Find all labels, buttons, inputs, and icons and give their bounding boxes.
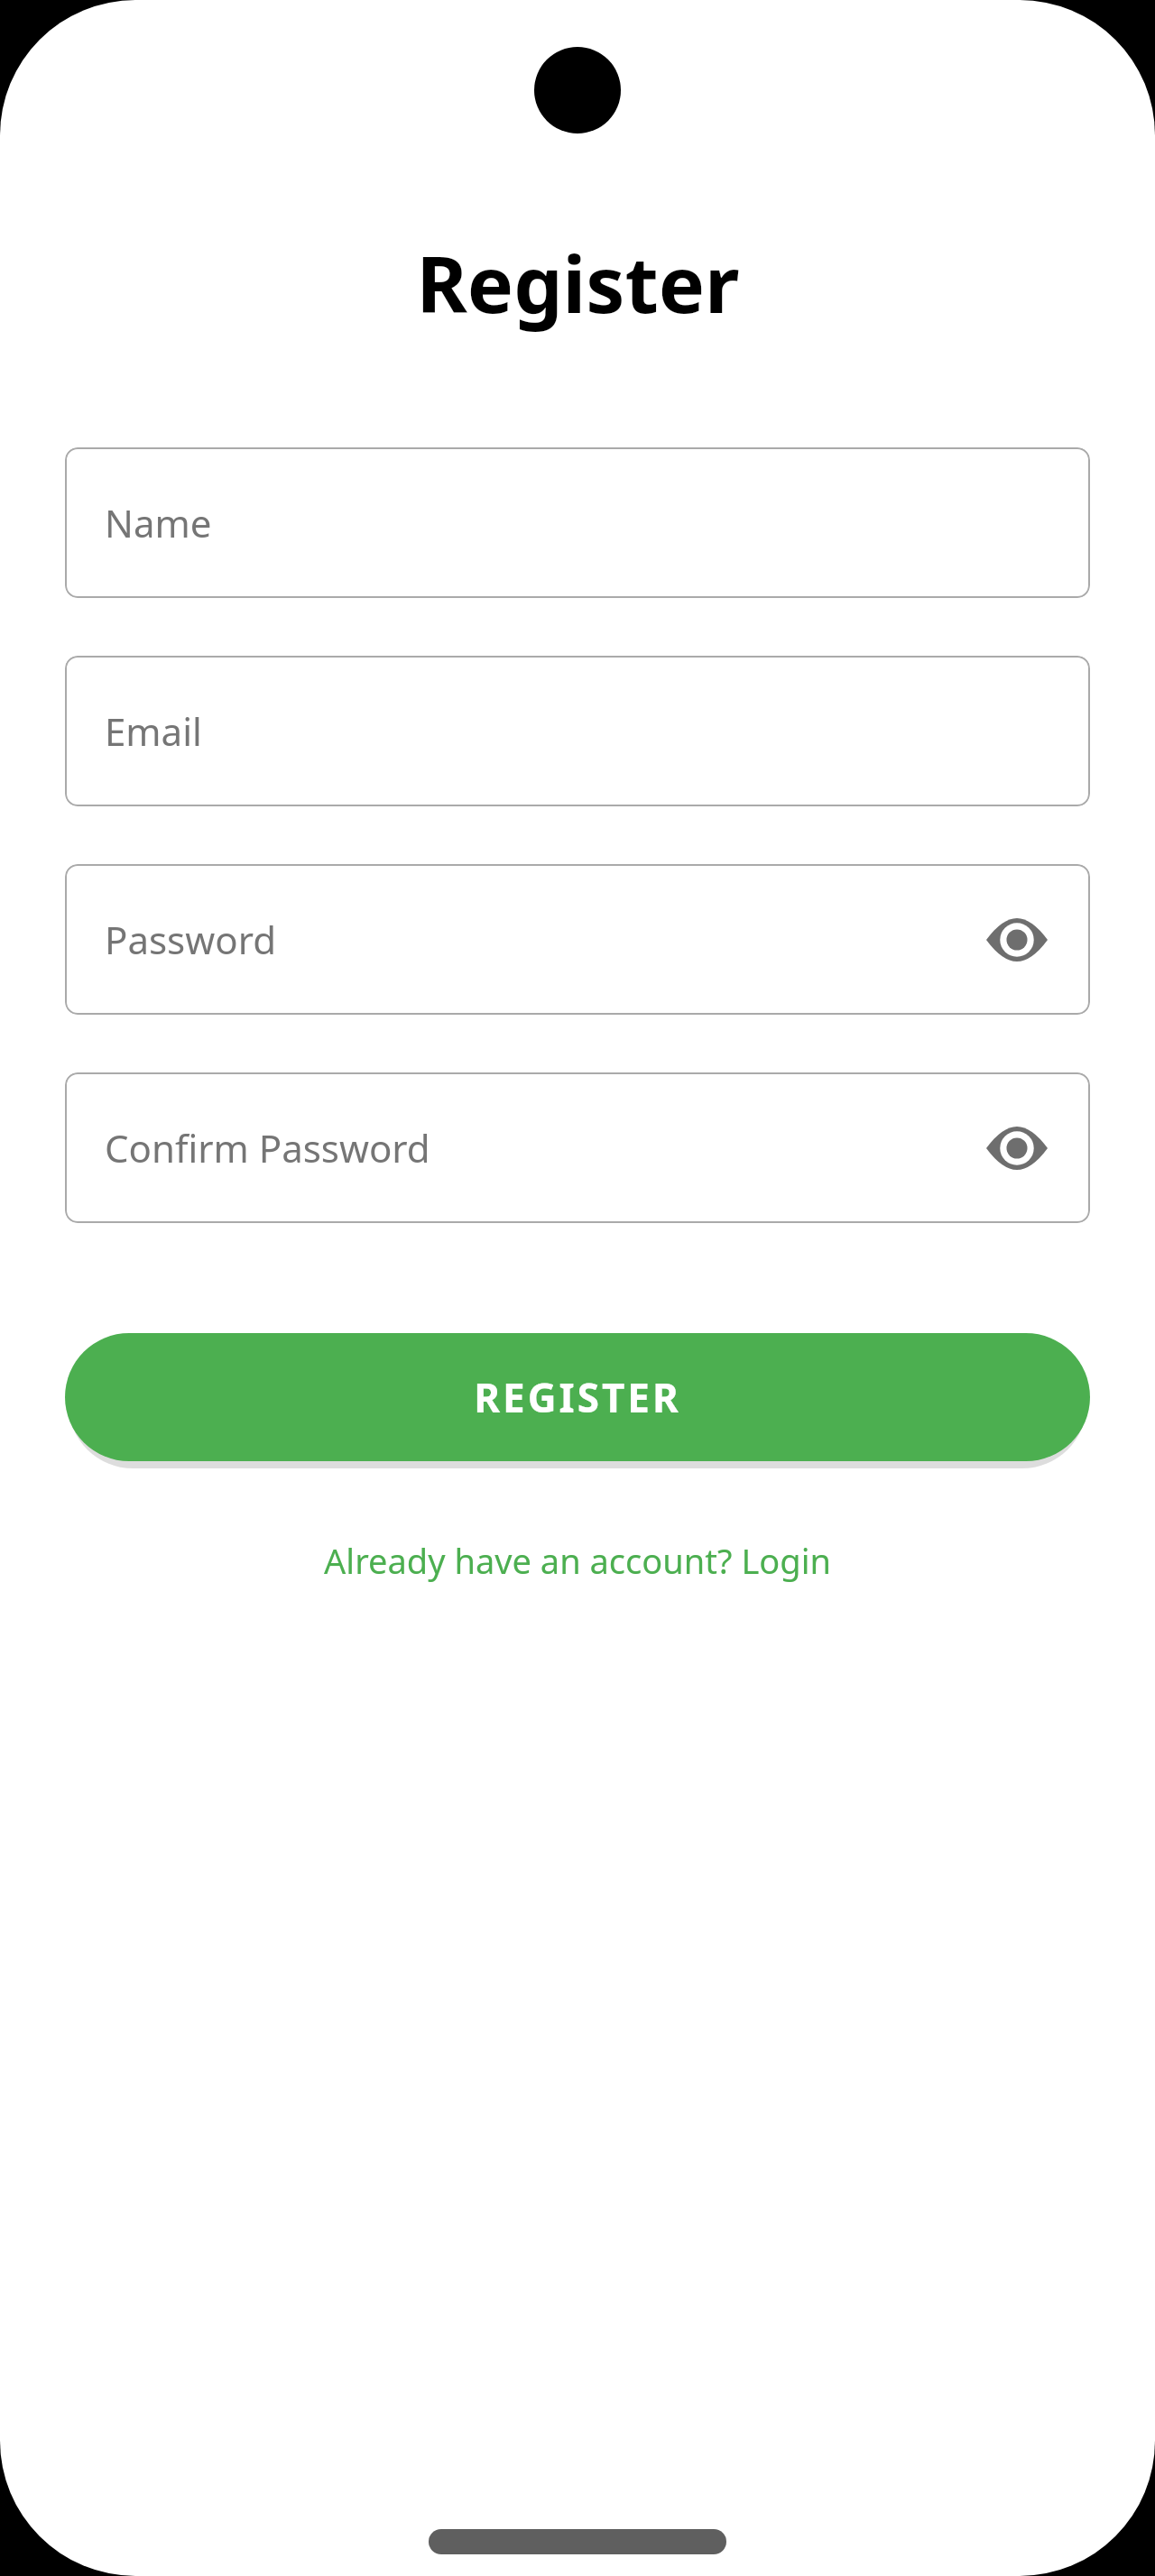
button[interactable]: Email xyxy=(65,656,1090,806)
staticText: Email xyxy=(105,705,202,757)
button[interactable]: Show password xyxy=(980,1111,1054,1185)
staticText: Password xyxy=(105,914,276,965)
button[interactable]: Name xyxy=(65,447,1090,598)
staticText: Name xyxy=(105,497,212,548)
staticText: Already have an account? Login xyxy=(324,1537,831,1584)
staticText: REGISTER xyxy=(474,1370,681,1424)
staticText: Register xyxy=(416,230,740,336)
button[interactable]: Password xyxy=(65,864,1090,1015)
button[interactable]: REGISTER xyxy=(65,1333,1090,1461)
staticText: Confirm Password xyxy=(105,1122,430,1173)
button[interactable]: Confirm Password xyxy=(65,1072,1090,1223)
button[interactable]: Already have an account? Login xyxy=(310,1530,845,1591)
button[interactable]: Show password xyxy=(980,903,1054,977)
